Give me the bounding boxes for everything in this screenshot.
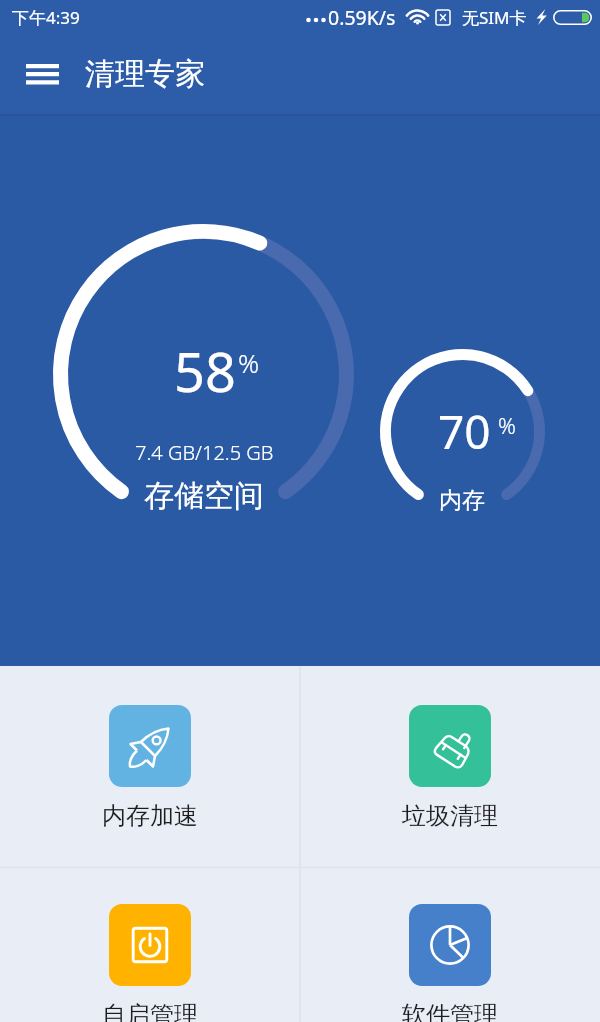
staticText: 内存 (439, 486, 485, 515)
staticText: 自启管理 (102, 1000, 198, 1022)
button[interactable]: 自启管理 (0, 865, 300, 1022)
staticText: % (238, 345, 260, 380)
button[interactable]: 软件管理 (300, 865, 600, 1022)
button[interactable]: Menu (19, 54, 65, 94)
button[interactable]: Memory usage 70 percent (380, 349, 545, 514)
staticText: 58 (174, 334, 236, 408)
staticText: 无SIM卡 (462, 6, 527, 29)
button[interactable]: Storage usage 58 percent (53, 224, 354, 525)
staticText: 0.59K/s (328, 4, 396, 31)
staticText: % (498, 410, 516, 440)
staticText: 7.4 GB/12.5 GB (135, 439, 274, 466)
staticText: 下午4:39 (12, 6, 80, 29)
staticText: 软件管理 (402, 1000, 498, 1022)
button[interactable]: 内存加速 (0, 666, 300, 865)
staticText: 存储空间 (144, 477, 264, 515)
staticText: 内存加速 (102, 801, 198, 831)
button[interactable]: 垃圾清理 (300, 666, 600, 865)
staticText: 清理专家 (85, 55, 205, 93)
staticText: 70 (438, 400, 491, 463)
staticText: 垃圾清理 (402, 801, 498, 831)
